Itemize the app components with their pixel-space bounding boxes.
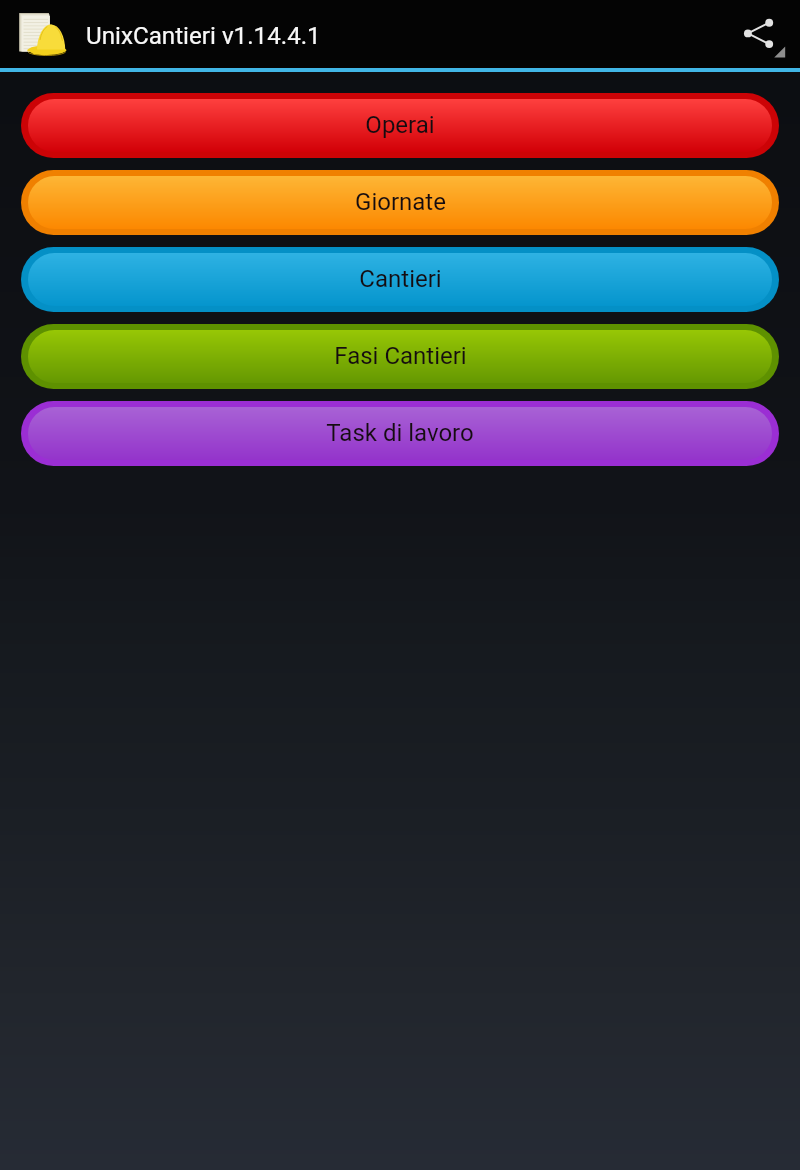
button[interactable]: Share [722,0,800,68]
button[interactable]: Fasi Cantieri [21,324,779,389]
staticText: Operai [365,111,435,139]
button[interactable]: Cantieri [21,247,779,312]
staticText: UnixCantieri v1.14.4.1 [86,22,321,50]
staticText: Cantieri [359,265,442,293]
button[interactable]: Operai [21,93,779,158]
staticText: Task di lavoro [326,419,474,447]
staticText: Giornate [355,188,446,216]
button[interactable]: Task di lavoro [21,401,779,466]
button[interactable]: Giornate [21,170,779,235]
staticText: Fasi Cantieri [334,342,467,370]
